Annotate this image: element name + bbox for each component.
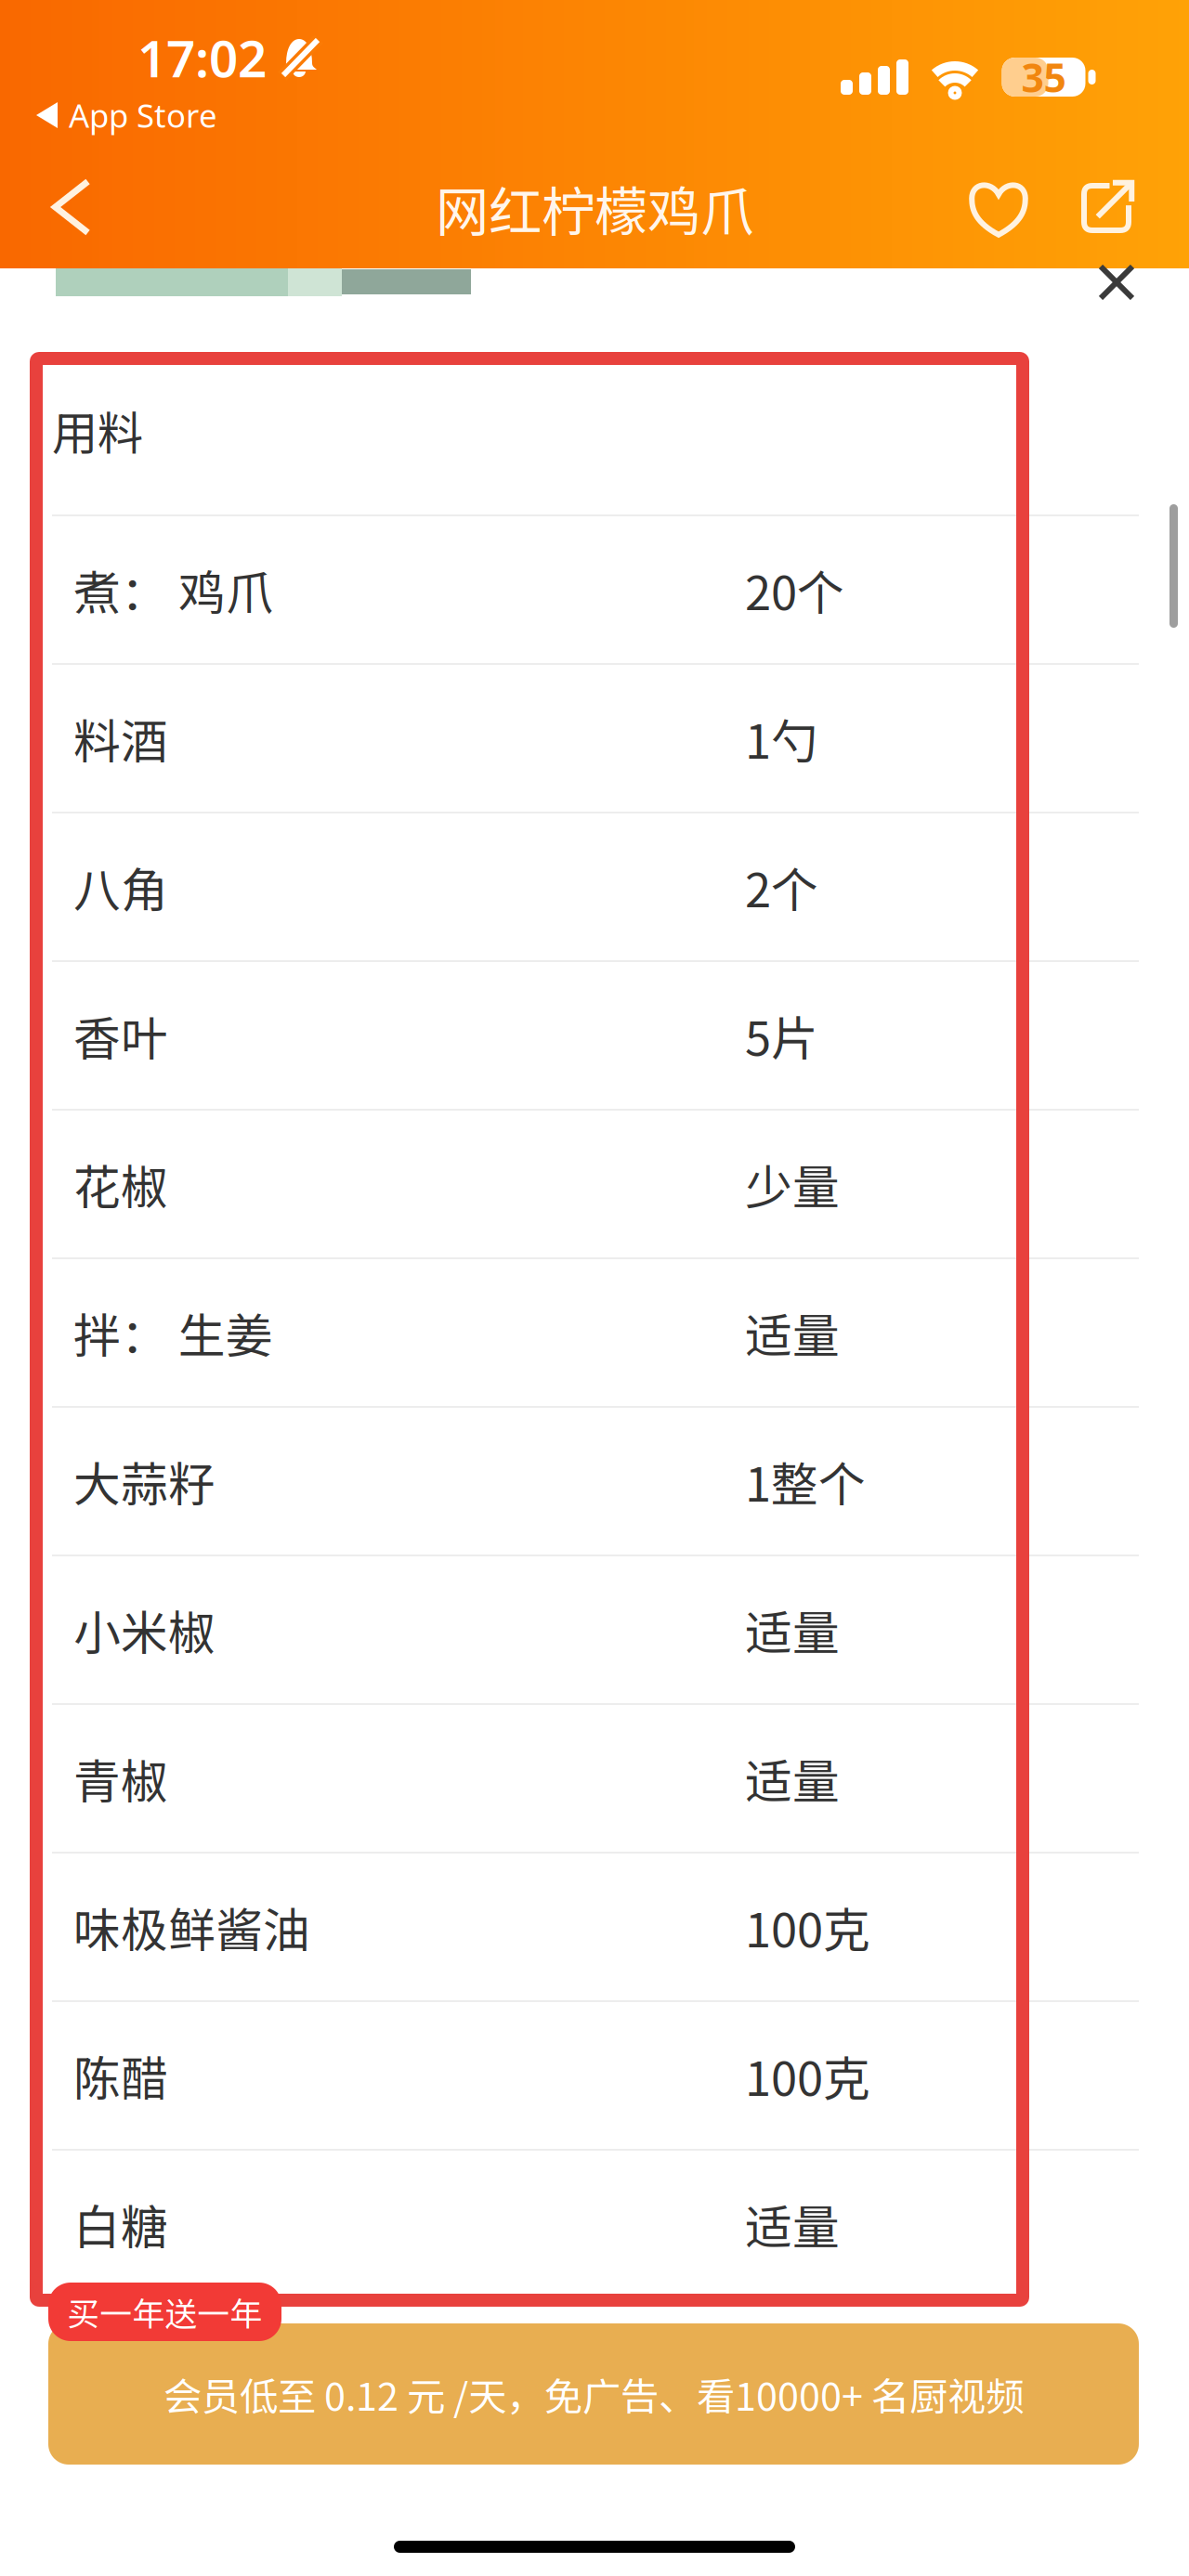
staticText: App Store — [69, 94, 217, 137]
button[interactable]: 会员低至 0.12 元 /天，免广告、看10000+ 名厨视频 — [0, 2301, 1189, 2465]
staticText: 20个 — [745, 556, 844, 624]
staticText: 料酒 — [73, 704, 168, 772]
staticText: 100克 — [745, 2041, 870, 2110]
button[interactable]: 八角 — [0, 812, 1189, 960]
staticText: 白糖 — [73, 2190, 168, 2258]
staticText: 35 — [1021, 51, 1066, 103]
staticText: 适量 — [745, 2190, 840, 2258]
button[interactable]: 味极鲜酱油 — [0, 1852, 1189, 2000]
staticText: 用料 — [52, 397, 143, 463]
staticText: 味极鲜酱油 — [73, 1893, 310, 1961]
staticText: 大蒜籽 — [73, 1447, 216, 1515]
staticText: 八角 — [73, 853, 168, 921]
staticText: 少量 — [745, 1150, 840, 1218]
staticText: 买一年送一年 — [67, 2288, 262, 2335]
button[interactable]: 青椒 — [0, 1703, 1189, 1852]
staticText: 青椒 — [73, 1744, 168, 1812]
staticText: 煮： 鸡爪 — [73, 556, 273, 624]
button[interactable]: 拌： 生姜 — [0, 1257, 1189, 1406]
staticText: 小米椒 — [73, 1596, 216, 1664]
button[interactable]: Share — [1058, 160, 1155, 256]
button[interactable]: 白糖 — [0, 2149, 1189, 2297]
button[interactable]: Favorite — [948, 160, 1049, 256]
staticText: 香叶 — [73, 1001, 168, 1069]
button[interactable]: 香叶 — [0, 960, 1189, 1109]
button[interactable]: 小米椒 — [0, 1555, 1189, 1703]
button[interactable]: Back — [16, 159, 127, 255]
staticText: 2个 — [745, 853, 818, 921]
staticText: 适量 — [745, 1298, 840, 1367]
button[interactable]: Close ad — [1074, 254, 1159, 311]
staticText: 17:02 — [137, 24, 267, 91]
button[interactable]: 大蒜籽 — [0, 1406, 1189, 1555]
button[interactable]: 花椒 — [0, 1109, 1189, 1257]
staticText: 100克 — [745, 1893, 870, 1961]
staticText: 5片 — [745, 1001, 818, 1069]
staticText: 1整个 — [745, 1447, 866, 1515]
staticText: 花椒 — [73, 1150, 168, 1218]
button[interactable]: 陈醋 — [0, 2000, 1189, 2149]
button[interactable]: Back to App Store — [35, 95, 217, 136]
staticText: 1勺 — [745, 704, 818, 772]
button[interactable]: 料酒 — [0, 663, 1189, 812]
staticText: 网红柠檬鸡爪 — [436, 169, 753, 247]
staticText: 适量 — [745, 1744, 840, 1812]
staticText: 适量 — [745, 1596, 840, 1664]
staticText: 拌： 生姜 — [73, 1298, 273, 1367]
staticText: 陈醋 — [73, 2041, 168, 2110]
staticText: 会员低至 0.12 元 /天，免广告、看10000+ 名厨视频 — [163, 2366, 1024, 2422]
button[interactable]: 煮： 鸡爪 — [0, 514, 1189, 663]
